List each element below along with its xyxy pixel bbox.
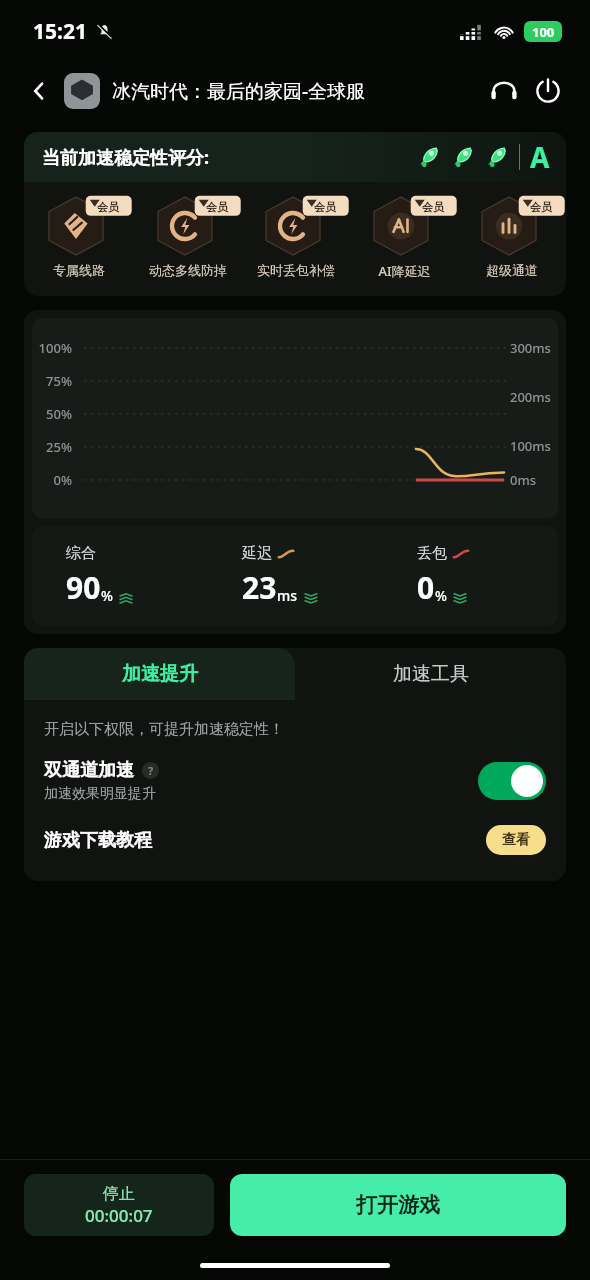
staticText: 综合 <box>66 544 96 563</box>
staticText: 查看 <box>502 831 530 849</box>
button[interactable]: Refresh <box>528 71 568 111</box>
staticText: 丢包 <box>417 544 447 563</box>
staticText: 加速提升 <box>122 662 198 686</box>
staticText: 会员 <box>206 200 228 214</box>
staticText: 0% <box>32 471 72 489</box>
button[interactable]: 双通道加速 <box>24 753 566 809</box>
button[interactable]: 打开游戏 <box>230 1174 566 1236</box>
staticText: 专属线路 <box>53 262 105 278</box>
staticText: 停止 <box>103 1184 135 1204</box>
button[interactable]: 加速工具 <box>295 648 566 700</box>
staticText: 延迟 <box>242 544 272 563</box>
staticText: 加速工具 <box>393 662 469 686</box>
staticText: 打开游戏 <box>356 1192 440 1218</box>
staticText: 开启以下权限，可提升加速稳定性！ <box>44 720 284 739</box>
staticText: 00:00:07 <box>85 1204 153 1227</box>
button[interactable]: 会员 <box>458 196 566 278</box>
staticText: 100ms <box>510 437 558 455</box>
staticText: ? <box>148 763 154 778</box>
staticText: 超级通道 <box>486 262 538 278</box>
staticText: 100% <box>32 339 72 357</box>
staticText: 加速效果明显提升 <box>44 785 156 803</box>
staticText: 冰汽时代：最后的家园-全球服 <box>112 78 484 104</box>
staticText: 会员 <box>314 200 336 214</box>
staticText: 当前加速稳定性评分: <box>42 145 210 170</box>
staticText: 游戏下载教程 <box>44 829 486 852</box>
staticText: 实时丢包补偿 <box>257 262 335 278</box>
staticText: 25% <box>32 438 72 456</box>
button[interactable]: 会员 <box>133 196 242 278</box>
staticText: A <box>530 138 550 176</box>
staticText: 75% <box>32 372 72 390</box>
staticText: AI降延迟 <box>378 262 431 280</box>
staticText: 300ms <box>510 339 558 357</box>
staticText: 会员 <box>530 200 552 214</box>
staticText: 200ms <box>510 388 558 406</box>
button[interactable]: 游戏下载教程 <box>24 825 566 855</box>
button[interactable]: Dual channel toggle <box>478 762 546 800</box>
staticText: 会员 <box>97 200 119 214</box>
button[interactable]: 会员 <box>24 196 133 278</box>
staticText: 0ms <box>510 471 558 489</box>
staticText: ms <box>277 586 298 605</box>
button[interactable]: 停止 <box>24 1174 214 1236</box>
staticText: 会员 <box>422 200 444 214</box>
staticText: % <box>435 586 447 605</box>
staticText: 0 <box>417 567 435 608</box>
staticText: 15:21 <box>33 17 87 46</box>
button[interactable]: 查看 <box>486 825 546 855</box>
staticText: 双通道加速 <box>44 759 134 782</box>
staticText: 50% <box>32 405 72 423</box>
button[interactable]: Headset <box>484 71 524 111</box>
staticText: 100 <box>532 23 555 41</box>
staticText: 90 <box>66 567 101 608</box>
staticText: 动态多线防掉 <box>149 262 227 278</box>
staticText: % <box>101 586 113 605</box>
button[interactable]: 会员 <box>242 196 350 278</box>
button[interactable]: 加速提升 <box>24 648 295 700</box>
staticText: 23 <box>242 567 277 608</box>
button[interactable]: 会员 <box>350 196 458 280</box>
button[interactable]: Back <box>22 74 56 108</box>
